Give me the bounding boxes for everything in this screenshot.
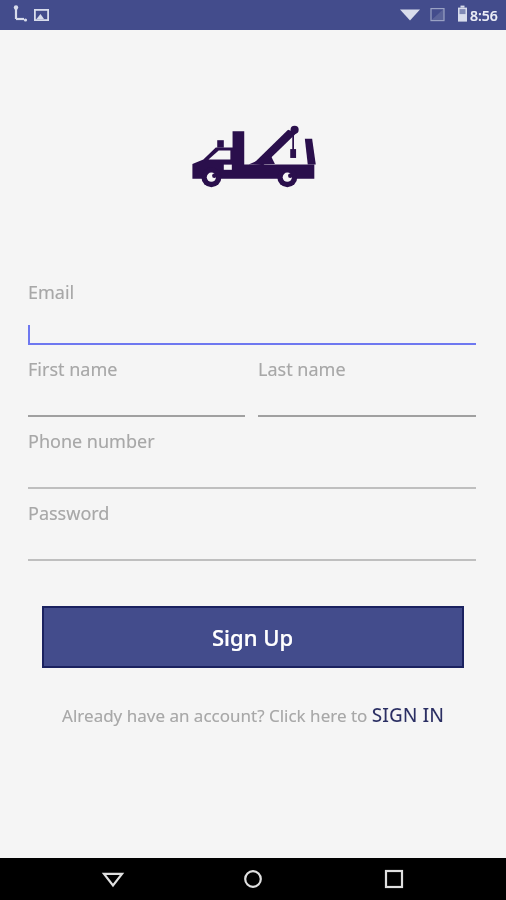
staticText: First name	[28, 357, 118, 382]
staticText: Password	[28, 501, 110, 526]
button[interactable]: Back	[85, 858, 141, 900]
button[interactable]: First name	[28, 357, 245, 417]
button[interactable]: Already have an account? Click here to S…	[16, 702, 490, 728]
staticText: Email	[28, 280, 75, 305]
button[interactable]: Phone number	[28, 429, 476, 489]
staticText: Sign Up	[212, 622, 294, 652]
button[interactable]: Recent apps	[366, 858, 422, 900]
button[interactable]: Sign Up	[42, 606, 464, 668]
staticText: Last name	[258, 357, 346, 382]
staticText: Already have an account? Click here to S…	[62, 702, 444, 728]
button[interactable]: Last name	[258, 357, 476, 417]
button[interactable]	[28, 323, 476, 345]
button[interactable]: Home	[225, 858, 281, 900]
staticText: Phone number	[28, 429, 155, 454]
staticText: 8:56	[470, 6, 498, 25]
button[interactable]: Password	[28, 501, 476, 561]
